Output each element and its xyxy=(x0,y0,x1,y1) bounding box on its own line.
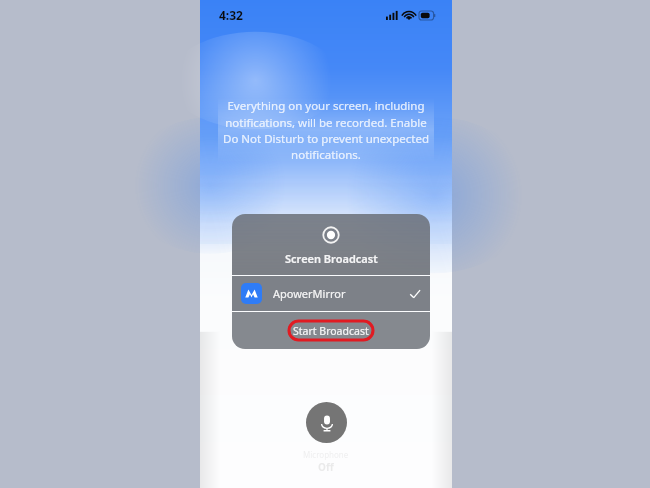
staticText: Everything on your screen, including not… xyxy=(218,98,434,162)
staticText: Start Broadcast xyxy=(293,324,369,338)
button[interactable]: ApowerMirror xyxy=(232,276,430,311)
staticText: ApowerMirror xyxy=(273,286,409,301)
staticText: Off xyxy=(318,460,334,474)
staticText: Microphone xyxy=(303,449,349,460)
staticText: 4:32 xyxy=(219,7,243,23)
button[interactable]: Microphone xyxy=(306,402,347,443)
staticText: Screen Broadcast xyxy=(285,251,378,266)
button[interactable]: Start Broadcast xyxy=(287,319,375,342)
